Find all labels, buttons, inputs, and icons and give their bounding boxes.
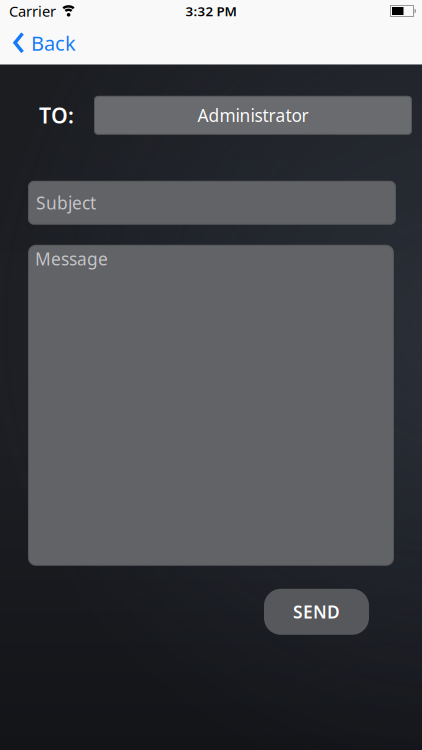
button[interactable]: Subject: [28, 181, 396, 225]
button[interactable]: Back: [0, 30, 76, 56]
staticText: Carrier: [9, 1, 56, 21]
button[interactable]: SEND: [264, 589, 369, 635]
staticText: Back: [31, 30, 76, 56]
staticText: 3:32 PM: [185, 2, 236, 20]
button[interactable]: Administrator: [94, 96, 412, 135]
staticText: SEND: [293, 600, 340, 623]
staticText: TO:: [39, 101, 74, 129]
staticText: Message: [35, 247, 108, 270]
button[interactable]: Message: [28, 245, 394, 566]
staticText: Subject: [36, 191, 96, 214]
staticText: Administrator: [197, 104, 308, 127]
